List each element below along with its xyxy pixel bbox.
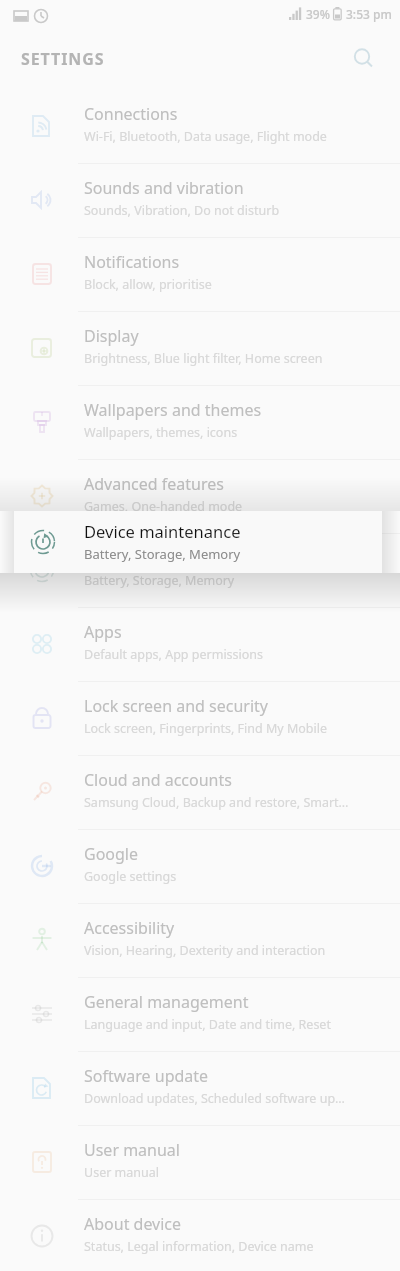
button[interactable]: Search	[344, 39, 384, 79]
staticText: Wallpapers, themes, icons	[84, 424, 384, 441]
button[interactable]: About device	[0, 1200, 400, 1271]
staticText: Sounds and vibration	[84, 177, 244, 199]
staticText: Vision, Hearing, Dexterity and interacti…	[84, 942, 384, 959]
button[interactable]: Google	[0, 830, 400, 904]
staticText: Software update	[84, 1065, 209, 1087]
staticText: Lock screen and security	[84, 695, 268, 717]
staticText: Notifications	[84, 251, 180, 273]
staticText: Sounds, Vibration, Do not disturb	[84, 202, 384, 219]
staticText: Download updates, Scheduled software up…	[84, 1090, 384, 1107]
staticText: Lock screen, Fingerprints, Find My Mobil…	[84, 720, 384, 737]
button[interactable]: Software update	[0, 1052, 400, 1126]
staticText: Advanced features	[84, 473, 224, 495]
staticText: Brightness, Blue light filter, Home scre…	[84, 350, 384, 367]
staticText: Battery, Storage, Memory	[84, 572, 384, 589]
button[interactable]: Apps	[0, 608, 400, 682]
staticText: General management	[84, 991, 249, 1013]
staticText: Wallpapers and themes	[84, 399, 262, 421]
button[interactable]: Notifications	[0, 238, 400, 312]
staticText: Display	[84, 325, 139, 347]
staticText: Default apps, App permissions	[84, 646, 384, 663]
button[interactable]: Connections	[0, 90, 400, 164]
staticText: Connections	[84, 103, 178, 125]
button[interactable]: User manual	[0, 1126, 400, 1200]
staticText: Google settings	[84, 868, 384, 885]
button[interactable]: Sounds and vibration	[0, 164, 400, 238]
staticText: Status, Legal information, Device name	[84, 1238, 384, 1255]
staticText: Accessibility	[84, 917, 175, 939]
button[interactable]: Wallpapers and themes	[0, 386, 400, 460]
button[interactable]: Display	[0, 312, 400, 386]
button[interactable]: Device maintenance	[0, 534, 400, 608]
staticText: Apps	[84, 621, 122, 643]
staticText: SETTINGS	[21, 48, 105, 70]
button[interactable]: General management	[0, 978, 400, 1052]
staticText: Games, One-handed mode	[84, 498, 384, 515]
staticText: Samsung Cloud, Backup and restore, Smart…	[84, 794, 384, 811]
staticText: User manual	[84, 1164, 384, 1181]
button[interactable]: Lock screen and security	[0, 682, 400, 756]
button[interactable]: Device maintenance	[14, 511, 382, 573]
staticText: 3:53 pm	[346, 6, 392, 22]
staticText: Battery, Storage, Memory	[84, 545, 241, 563]
staticText: Device maintenance	[84, 520, 241, 542]
button[interactable]: Cloud and accounts	[0, 756, 400, 830]
staticText: About device	[84, 1213, 182, 1235]
button[interactable]: Advanced features	[0, 460, 400, 534]
staticText: Cloud and accounts	[84, 769, 232, 791]
staticText: Wi-Fi, Bluetooth, Data usage, Flight mod…	[84, 128, 384, 145]
staticText: Device maintenance	[84, 547, 236, 569]
staticText: Language and input, Date and time, Reset	[84, 1016, 384, 1033]
staticText: Google	[84, 843, 139, 865]
button[interactable]: Accessibility	[0, 904, 400, 978]
staticText: User manual	[84, 1139, 180, 1161]
staticText: Block, allow, prioritise	[84, 276, 384, 293]
staticText: 39%	[306, 6, 330, 22]
